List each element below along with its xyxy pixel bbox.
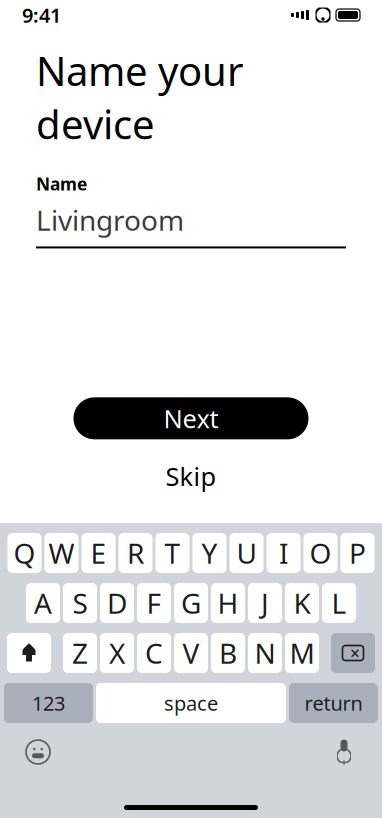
staticText: K	[293, 584, 310, 622]
staticText: B	[219, 634, 237, 672]
staticText: space	[164, 690, 218, 716]
button[interactable]: W	[44, 533, 78, 573]
staticText: P	[349, 534, 366, 572]
button[interactable]: Delete	[331, 633, 375, 673]
staticText: H	[217, 584, 238, 622]
staticText: U	[236, 534, 256, 572]
staticText: F	[146, 584, 161, 622]
button[interactable]: Emoji	[18, 735, 58, 769]
button[interactable]: D	[100, 583, 134, 623]
button[interactable]: R	[118, 533, 152, 573]
staticText: S	[72, 584, 87, 622]
button[interactable]: X	[100, 633, 134, 673]
button[interactable]: M	[285, 633, 319, 673]
button[interactable]: Y	[192, 533, 226, 573]
button[interactable]: space	[96, 683, 286, 723]
button[interactable]: I	[266, 533, 300, 573]
staticText: T	[164, 534, 180, 572]
staticText: I	[279, 534, 288, 572]
staticText: C	[145, 634, 163, 672]
staticText: Next	[163, 401, 218, 435]
button[interactable]: O	[303, 533, 337, 573]
button[interactable]: P	[340, 533, 374, 573]
button[interactable]: F	[137, 583, 171, 623]
button[interactable]: H	[211, 583, 245, 623]
staticText: Z	[72, 634, 88, 672]
button[interactable]: Skip	[143, 451, 238, 501]
staticText: 9:41	[22, 2, 61, 28]
button[interactable]: B	[211, 633, 245, 673]
button[interactable]: Next	[73, 397, 308, 439]
staticText: ×	[350, 641, 360, 664]
button[interactable]: U	[229, 533, 263, 573]
staticText: X	[109, 634, 125, 672]
button[interactable]: S	[63, 583, 97, 623]
staticText: Skip	[165, 459, 216, 493]
button[interactable]: K	[285, 583, 319, 623]
staticText: L	[331, 584, 346, 622]
button[interactable]: Shift	[7, 633, 51, 673]
staticText: E	[90, 534, 106, 572]
staticText: R	[127, 534, 144, 572]
staticText: Livingroom	[36, 201, 184, 238]
staticText: G	[181, 584, 201, 622]
button[interactable]: 123	[4, 683, 93, 723]
button[interactable]: A	[26, 583, 60, 623]
button[interactable]: C	[137, 633, 171, 673]
staticText: V	[182, 634, 199, 672]
staticText: J	[261, 584, 269, 622]
button[interactable]: E	[81, 533, 115, 573]
staticText: A	[34, 584, 52, 622]
staticText: 123	[32, 690, 65, 716]
staticText: Q	[13, 534, 35, 572]
button[interactable]: N	[248, 633, 282, 673]
button[interactable]: V	[174, 633, 208, 673]
staticText: O	[309, 534, 331, 572]
button[interactable]: J	[248, 583, 282, 623]
staticText: M	[289, 634, 314, 672]
staticText: Y	[201, 534, 217, 572]
staticText: return	[304, 690, 362, 716]
staticText: Name	[36, 172, 87, 195]
staticText: D	[107, 584, 127, 622]
staticText: N	[254, 634, 275, 672]
staticText: Name your device	[36, 44, 244, 150]
button[interactable]: T	[155, 533, 189, 573]
staticText: W	[48, 534, 74, 572]
button[interactable]: Dictation	[324, 735, 364, 769]
button[interactable]: G	[174, 583, 208, 623]
button[interactable]: Q	[7, 533, 41, 573]
button[interactable]: L	[322, 583, 356, 623]
button[interactable]: Z	[63, 633, 97, 673]
button[interactable]: return	[289, 683, 378, 723]
